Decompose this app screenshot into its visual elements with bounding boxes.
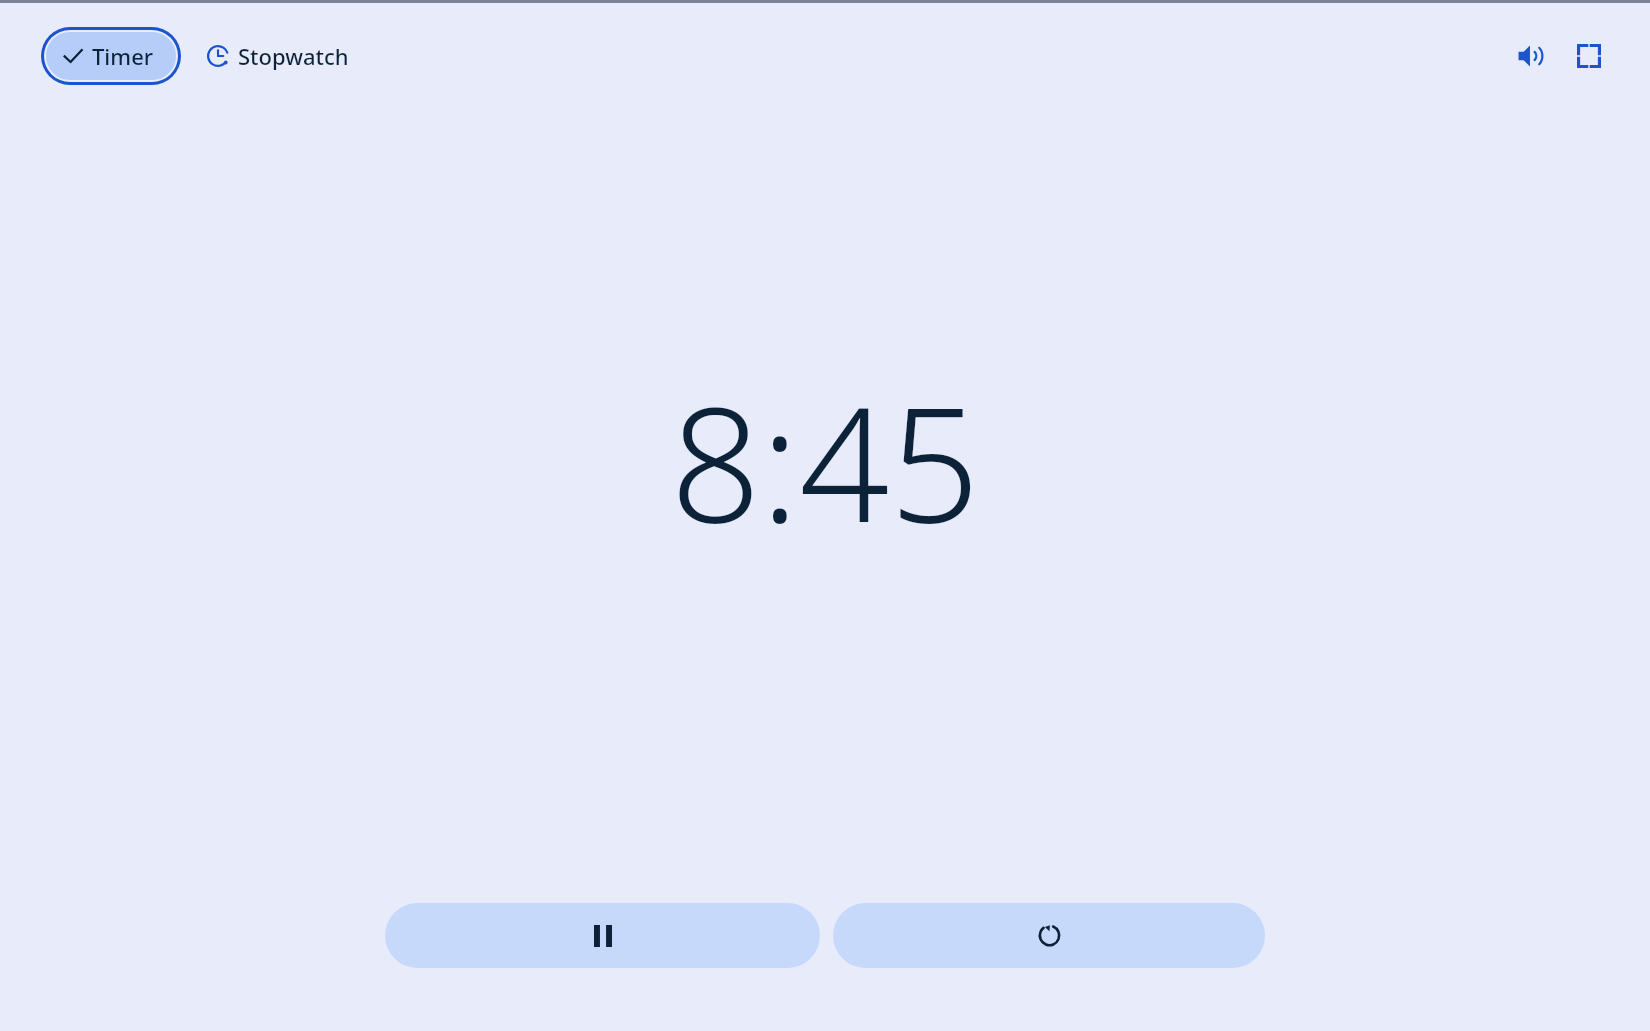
button[interactable]: Pause (385, 903, 820, 968)
staticText: Timer (92, 41, 154, 71)
button[interactable]: Reset (833, 903, 1265, 968)
button[interactable]: Fullscreen (1566, 33, 1612, 79)
button[interactable]: Stopwatch (203, 27, 353, 85)
button[interactable]: Sound (1508, 33, 1554, 79)
staticText: 8:45 (670, 353, 980, 568)
staticText: Stopwatch (238, 41, 349, 71)
button[interactable]: Timer (46, 32, 176, 80)
